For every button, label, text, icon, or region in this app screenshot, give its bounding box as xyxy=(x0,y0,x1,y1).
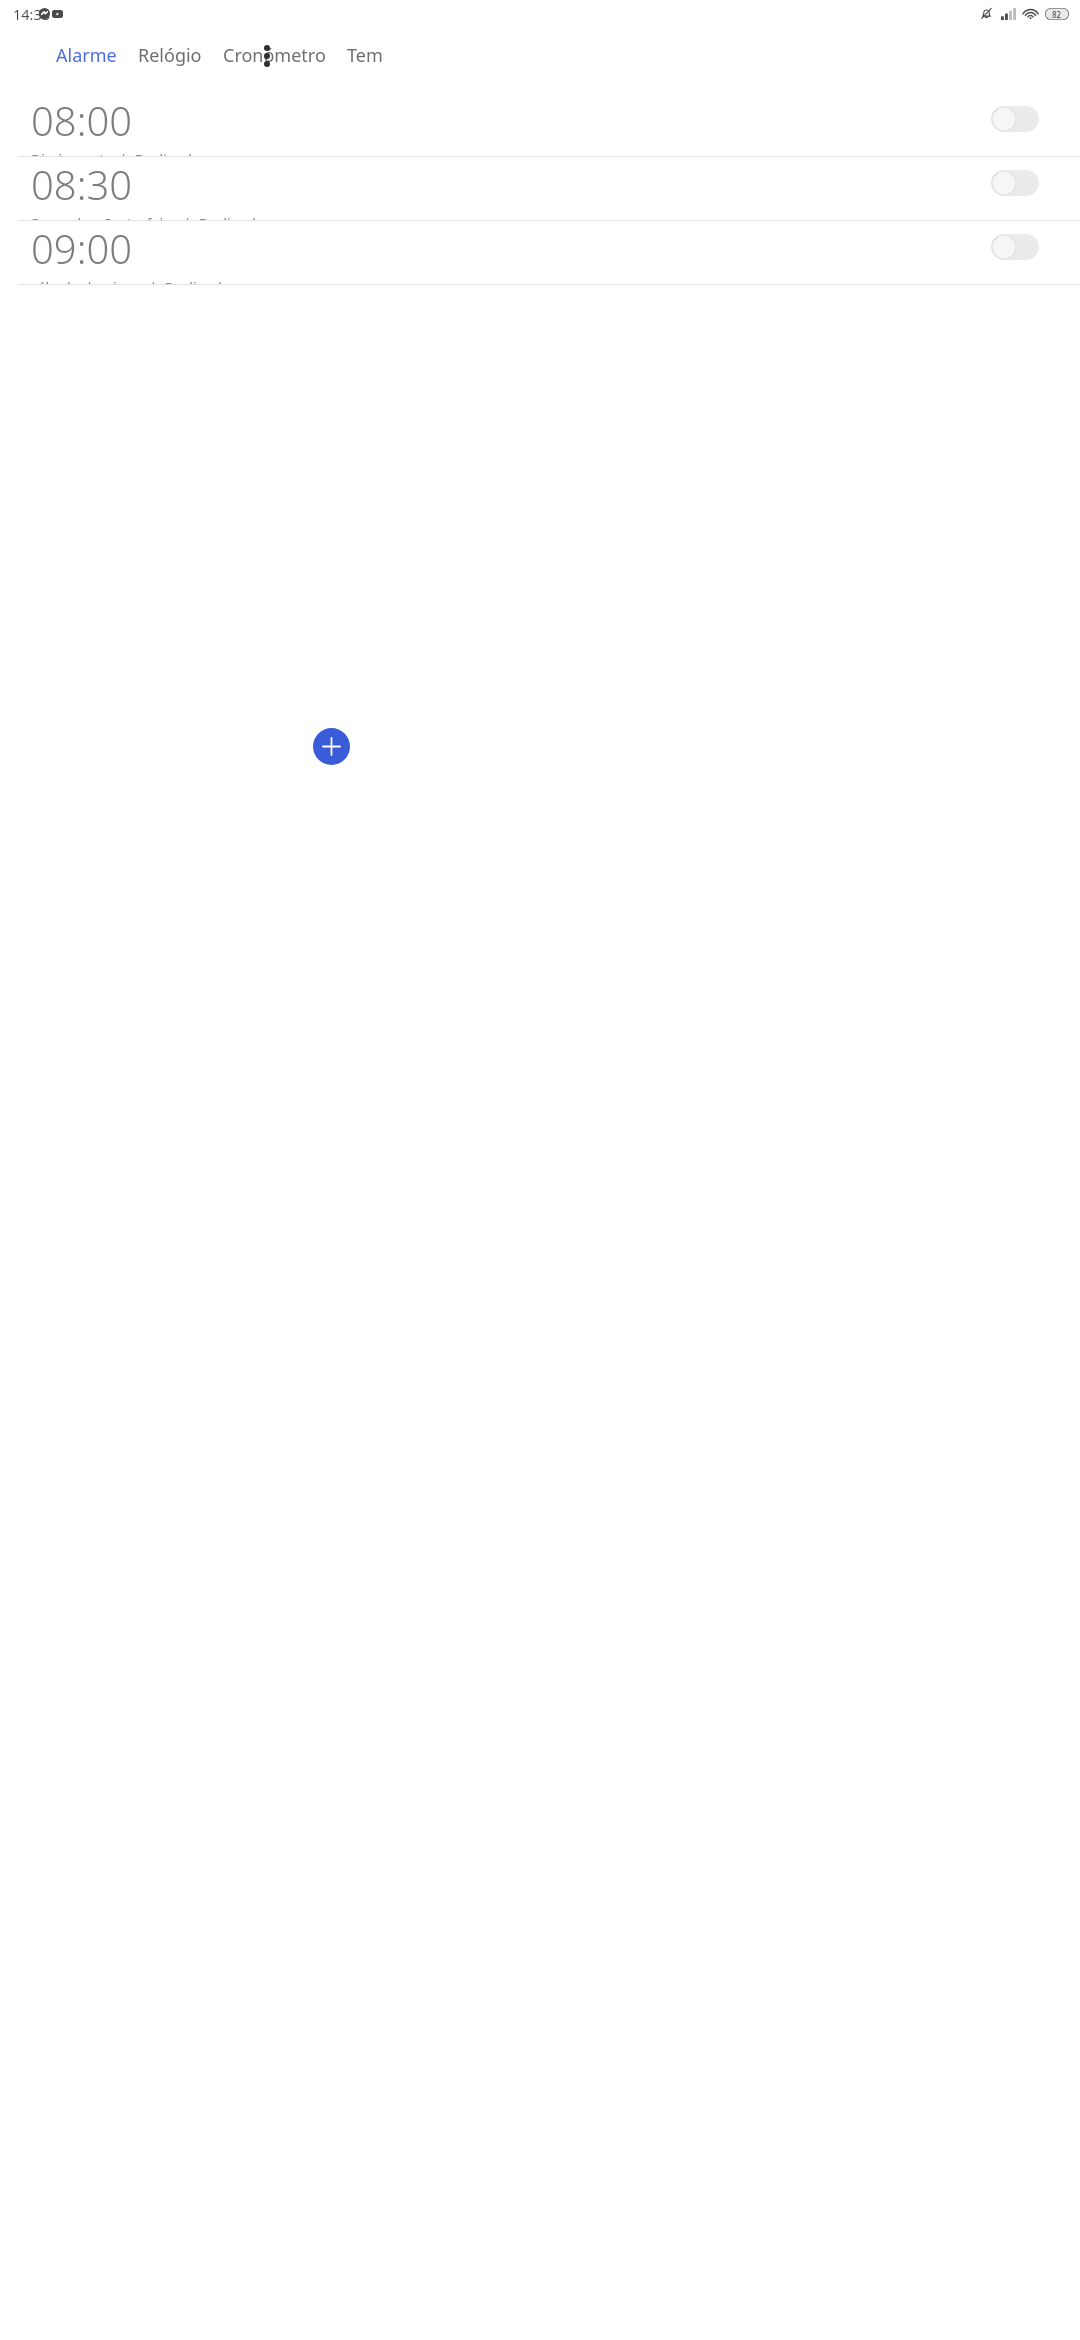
button[interactable]: More options xyxy=(252,39,282,73)
staticText: sábado domingo | Desligado xyxy=(31,278,231,284)
button[interactable]: Add alarm xyxy=(313,728,350,765)
staticText: Relógio xyxy=(138,43,202,68)
button[interactable]: Alarm toggle, off xyxy=(991,106,1039,132)
button[interactable]: Alarme xyxy=(56,43,117,68)
staticText: Temp xyxy=(347,43,387,68)
button[interactable]: Alarm toggle, off xyxy=(991,234,1039,260)
staticText: 08:00 xyxy=(31,93,133,147)
button[interactable]: Relógio xyxy=(138,43,202,68)
staticText: Cronómetro xyxy=(223,43,326,68)
staticText: Alarme xyxy=(56,43,117,68)
staticText: Diariamente | Desligado xyxy=(31,150,201,156)
staticText: 82 xyxy=(1052,9,1062,20)
button[interactable]: Cronómetro xyxy=(223,43,326,68)
button[interactable]: 09:00 xyxy=(0,221,1080,284)
staticText: 09:00 xyxy=(31,221,133,275)
button[interactable]: Alarm toggle, off xyxy=(991,170,1039,196)
button[interactable]: 08:00 xyxy=(0,93,1080,156)
button[interactable]: 08:30 xyxy=(0,157,1080,220)
staticText: 08:30 xyxy=(31,157,133,211)
staticText: 14:33 xyxy=(13,4,51,24)
staticText: Segunda a Sexta–feira | Desligado xyxy=(31,214,265,220)
